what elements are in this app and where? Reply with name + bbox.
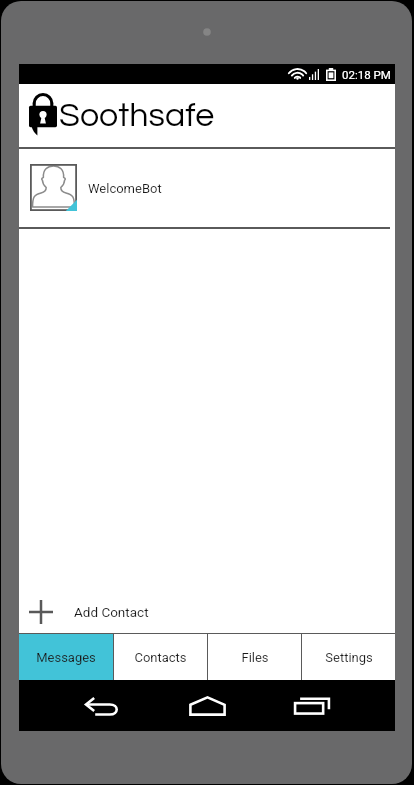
- button[interactable]: Add Contact: [19, 585, 395, 633]
- button[interactable]: Settings: [302, 634, 395, 680]
- staticText: Add Contact: [74, 604, 149, 620]
- staticText: Messages: [36, 650, 96, 665]
- staticText: Settings: [325, 650, 373, 665]
- button[interactable]: WelcomeBot: [19, 149, 395, 227]
- staticText: 02:18 PM: [342, 68, 391, 81]
- button[interactable]: Back: [55, 680, 149, 731]
- button[interactable]: Files: [208, 634, 301, 680]
- staticText: Soothsafe: [59, 98, 215, 133]
- staticText: Files: [241, 650, 269, 665]
- button[interactable]: Contacts: [114, 634, 207, 680]
- button[interactable]: Home: [160, 680, 254, 731]
- button[interactable]: Messages: [19, 634, 113, 680]
- staticText: WelcomeBot: [88, 181, 162, 196]
- button[interactable]: Recent apps: [265, 680, 359, 731]
- staticText: Contacts: [134, 650, 187, 665]
